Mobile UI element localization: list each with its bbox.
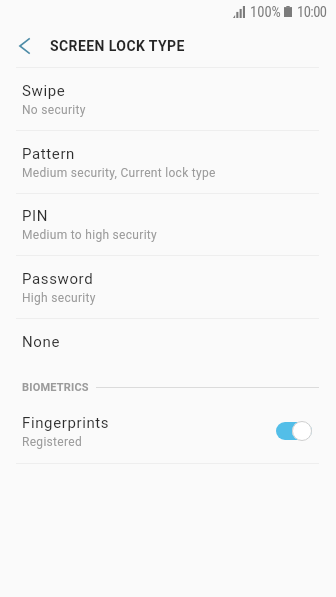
staticText: No security — [22, 103, 86, 117]
staticText: Fingerprints — [22, 414, 110, 432]
staticText: Medium to high security — [22, 228, 158, 242]
staticText: Medium security, Current lock type — [22, 166, 216, 180]
button[interactable]: Swipe — [0, 68, 336, 130]
staticText: Swipe — [22, 82, 66, 100]
staticText: Pattern — [22, 145, 76, 163]
button[interactable]: Navigate up — [0, 24, 46, 67]
button[interactable]: None — [0, 319, 336, 364]
staticText: High security — [22, 291, 96, 305]
button[interactable]: Fingerprints — [0, 399, 336, 463]
button[interactable]: Pattern — [0, 131, 336, 193]
button[interactable]: PIN — [0, 194, 336, 255]
button[interactable]: Fingerprints on — [276, 421, 312, 441]
staticText: PIN — [22, 207, 49, 225]
staticText: Registered — [22, 435, 82, 449]
staticText: BIOMETRICS — [22, 381, 89, 394]
staticText: Password — [22, 270, 94, 288]
staticText: 10:00 — [297, 3, 327, 20]
staticText: SCREEN LOCK TYPE — [50, 38, 185, 54]
button[interactable]: Password — [0, 256, 336, 318]
staticText: 100% — [250, 3, 281, 20]
staticText: None — [22, 333, 60, 351]
